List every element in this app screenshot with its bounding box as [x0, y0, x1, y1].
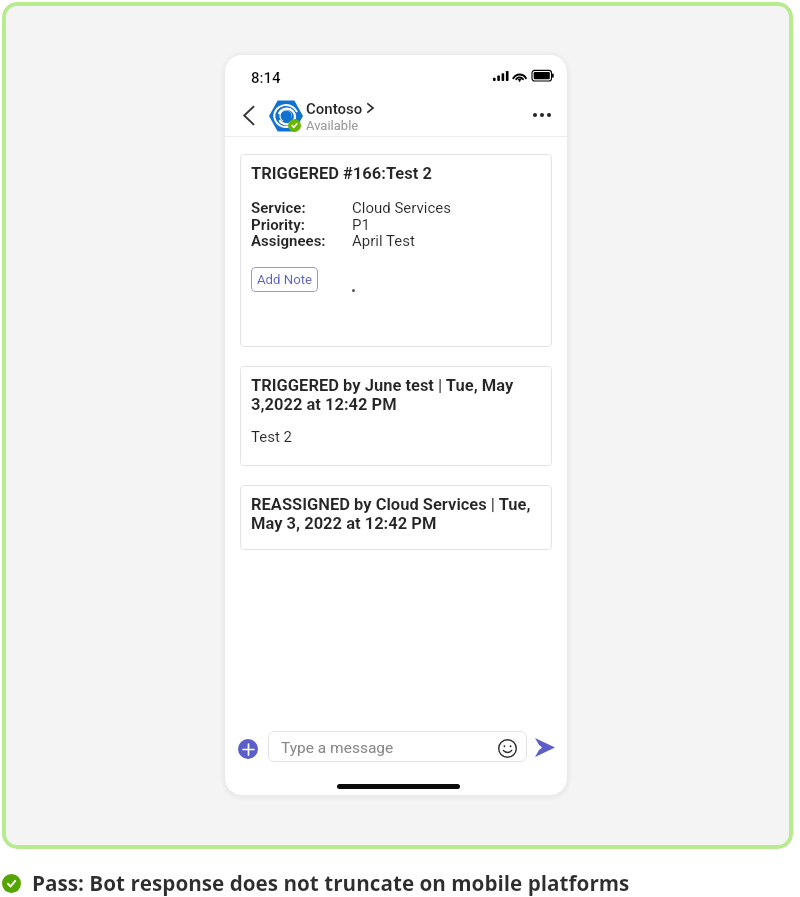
staticText: Type a message [281, 739, 394, 757]
button[interactable]: Add attachment [238, 739, 258, 759]
staticText: REASSIGNED by Cloud Services | Tue, May … [251, 495, 533, 533]
staticText: Service: [251, 199, 352, 217]
staticText: Pass: Bot response does not truncate on … [32, 869, 630, 897]
button[interactable]: Add Note [251, 267, 318, 292]
button[interactable]: Emoji [496, 737, 518, 759]
button[interactable]: More options [527, 101, 557, 129]
staticText: Add Note [257, 272, 312, 287]
button[interactable]: Type a message [268, 731, 527, 762]
staticText: 8:14 [251, 69, 281, 87]
button[interactable]: TRIGGERED by June test | Tue, May 3,2022… [240, 366, 552, 466]
staticText: Assignees: [251, 232, 352, 250]
staticText: Cloud Services [352, 199, 451, 217]
button[interactable]: Contoso [265, 96, 385, 136]
button[interactable]: TRIGGERED #166:Test 2 [240, 154, 552, 347]
staticText: April Test [352, 232, 415, 250]
button[interactable]: Send [532, 734, 558, 760]
staticText: Available [306, 118, 359, 133]
staticText: P1 [352, 216, 370, 234]
button[interactable]: REASSIGNED by Cloud Services | Tue, May … [240, 485, 552, 550]
staticText: Priority: [251, 216, 352, 234]
staticText: TRIGGERED #166:Test 2 [251, 164, 432, 183]
button[interactable]: Back [237, 99, 259, 131]
staticText: Test 2 [251, 428, 292, 446]
staticText: Contoso [306, 100, 363, 118]
staticText: TRIGGERED by June test | Tue, May 3,2022… [251, 376, 533, 414]
